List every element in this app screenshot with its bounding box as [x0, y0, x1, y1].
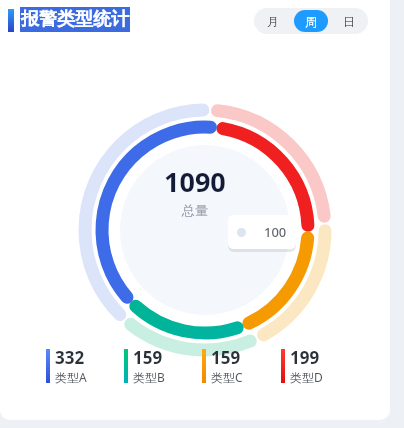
staticText: 总量	[182, 202, 208, 218]
staticText: 类型B	[133, 369, 165, 385]
staticText: 159	[133, 346, 163, 369]
staticText: 月	[267, 14, 279, 29]
staticText: 类型A	[55, 369, 87, 385]
staticText: 199	[290, 346, 320, 369]
staticText: 类型C	[211, 369, 243, 385]
staticText: 日	[343, 14, 355, 29]
button[interactable]: 月	[256, 10, 290, 32]
button[interactable]: 周	[294, 10, 328, 32]
staticText: 报警类型统计	[21, 8, 129, 31]
staticText: 周	[305, 14, 317, 29]
staticText: 类型D	[290, 369, 323, 385]
button[interactable]: 日	[332, 10, 366, 32]
button[interactable]: 199	[281, 346, 360, 385]
button[interactable]: 159	[124, 346, 202, 385]
staticText: 1090	[164, 163, 226, 200]
button[interactable]: 报警类型统计	[21, 8, 129, 31]
staticText: 159	[211, 346, 241, 369]
staticText: 100	[264, 223, 287, 241]
button[interactable]: 159	[202, 346, 281, 385]
staticText: 332	[55, 346, 85, 369]
button[interactable]: 332	[46, 346, 124, 385]
